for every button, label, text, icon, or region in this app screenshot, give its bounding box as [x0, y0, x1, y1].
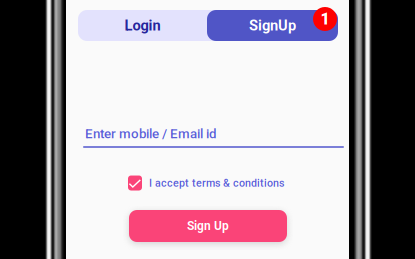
staticText: Enter mobile / Email id [85, 126, 217, 142]
button[interactable]: SignUp [207, 10, 338, 41]
staticText: Login [124, 17, 160, 34]
staticText: SignUp [249, 17, 296, 34]
button[interactable]: Sign Up [129, 210, 287, 242]
staticText: Sign Up [187, 219, 229, 233]
staticText: 1 [320, 10, 329, 28]
staticText: I accept terms & conditions [149, 177, 284, 189]
button[interactable]: Login [78, 10, 207, 41]
button[interactable]: I accept terms & conditions [128, 175, 284, 191]
